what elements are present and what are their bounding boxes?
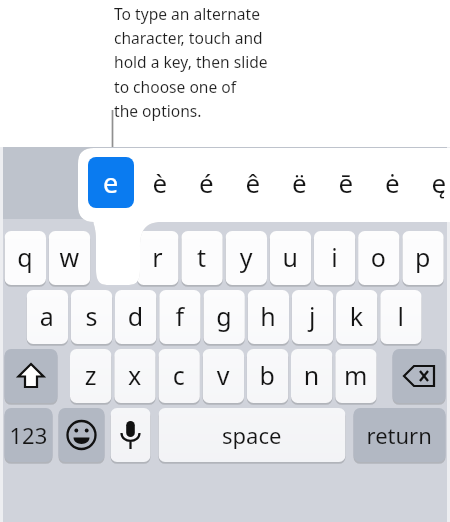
button[interactable]: Keyboard with alternate character popup	[0, 0, 450, 522]
